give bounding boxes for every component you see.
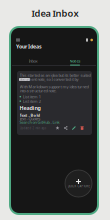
button[interactable]: Favourite	[55, 126, 59, 130]
staticText: Your Ideas	[16, 43, 42, 50]
staticText: document note, so I converted it by	[19, 76, 78, 82]
button[interactable]: Notes	[54, 57, 96, 65]
staticText: Inbox	[28, 58, 37, 64]
staticText: Text - Bold	[19, 112, 40, 118]
button[interactable]: Edit	[72, 126, 76, 130]
button[interactable]: Share	[64, 126, 68, 130]
staticText: List item 1	[23, 94, 41, 99]
button[interactable]: Quick Capture	[65, 170, 92, 197]
staticText: With Markdown support my idea turned	[19, 84, 88, 89]
button[interactable]: Menu	[15, 38, 21, 42]
button[interactable]: Inbox	[12, 57, 54, 65]
staticText: text - Quotes	[19, 116, 40, 121]
button[interactable]: Delete	[80, 126, 84, 130]
staticText: Notes	[69, 58, 80, 64]
staticText: This started as an idea but its better s…	[19, 72, 90, 78]
staticText: Idea Inbox	[31, 7, 78, 19]
staticText: List item 2	[23, 98, 41, 104]
staticText: Updated 2 min ago	[19, 126, 46, 130]
staticText: Search on GitHub - Link	[19, 119, 59, 125]
staticText: into a structured note.	[19, 88, 56, 93]
staticText: QUICK CAPTURE	[67, 184, 89, 188]
staticText: Heading	[19, 104, 40, 112]
